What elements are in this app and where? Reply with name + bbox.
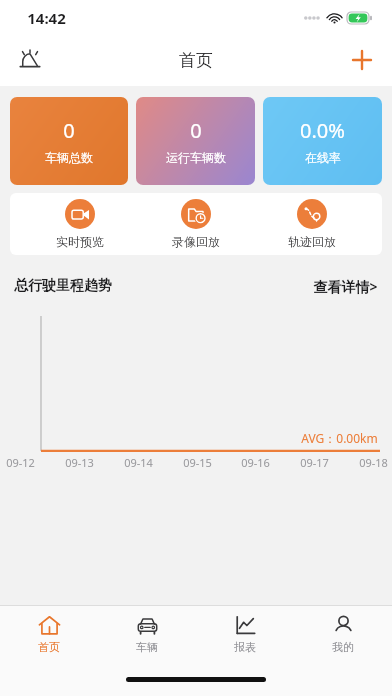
staticText: 运行车辆数 (166, 150, 226, 165)
staticText: 首页 (179, 50, 213, 71)
button[interactable]: 查看详情> (313, 277, 378, 296)
staticText: 14:42 (27, 8, 66, 28)
staticText: AVG：0.00km (301, 430, 378, 446)
staticText: 09-17 (300, 455, 329, 470)
staticText: 09-12 (6, 455, 35, 470)
staticText: 报表 (234, 640, 256, 654)
staticText: 轨迹回放 (288, 234, 336, 249)
staticText: 我的 (332, 640, 354, 654)
staticText: 0 (63, 117, 75, 144)
button[interactable]: Add (340, 38, 384, 82)
button[interactable]: 0 (136, 97, 255, 185)
staticText: 0 (190, 117, 202, 144)
staticText: 09-15 (183, 455, 212, 470)
staticText: 首页 (38, 640, 60, 654)
button[interactable]: 车辆 (98, 606, 196, 662)
button[interactable]: 我的 (294, 606, 392, 662)
staticText: 总行驶里程趋势 (14, 277, 112, 295)
button[interactable]: 0.0% (263, 97, 382, 185)
button[interactable]: 实时预览 (34, 197, 126, 251)
staticText: 09-16 (241, 455, 270, 470)
staticText: 09-18 (359, 455, 388, 470)
button[interactable]: Alarm (8, 38, 52, 82)
button[interactable]: 0 (10, 97, 128, 185)
button[interactable]: 录像回放 (150, 197, 242, 251)
button[interactable]: 报表 (196, 606, 294, 662)
staticText: 在线率 (305, 150, 341, 165)
staticText: 车辆总数 (45, 150, 93, 165)
staticText: 录像回放 (172, 234, 220, 249)
staticText: 0.0% (300, 117, 345, 144)
staticText: 查看详情> (313, 277, 378, 296)
button[interactable]: 首页 (0, 606, 98, 662)
staticText: 09-14 (124, 455, 153, 470)
button[interactable]: 轨迹回放 (266, 197, 358, 251)
staticText: 实时预览 (56, 234, 104, 249)
staticText: 09-13 (65, 455, 94, 470)
staticText: 车辆 (136, 640, 158, 654)
